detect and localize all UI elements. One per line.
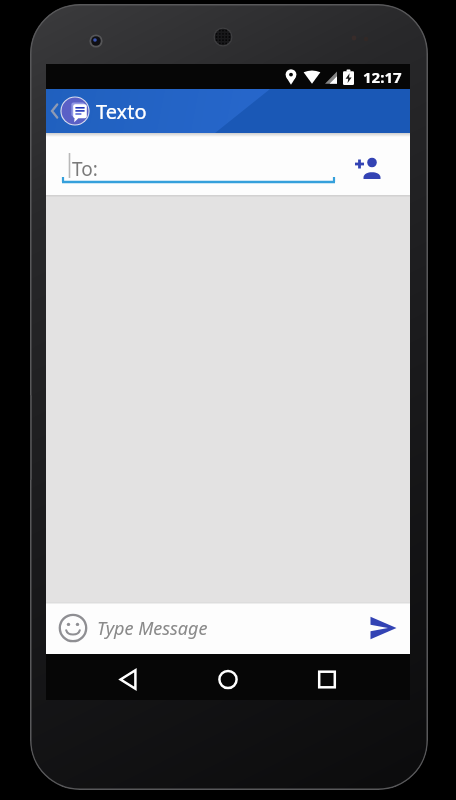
staticText: To:	[72, 156, 98, 182]
staticText: Type Message	[97, 616, 208, 641]
button[interactable]	[350, 153, 384, 183]
staticText: Texto	[96, 98, 147, 125]
button[interactable]: Texto	[46, 89, 410, 133]
button[interactable]	[59, 614, 87, 642]
staticText: 12:17	[363, 67, 402, 87]
button[interactable]	[370, 614, 398, 642]
